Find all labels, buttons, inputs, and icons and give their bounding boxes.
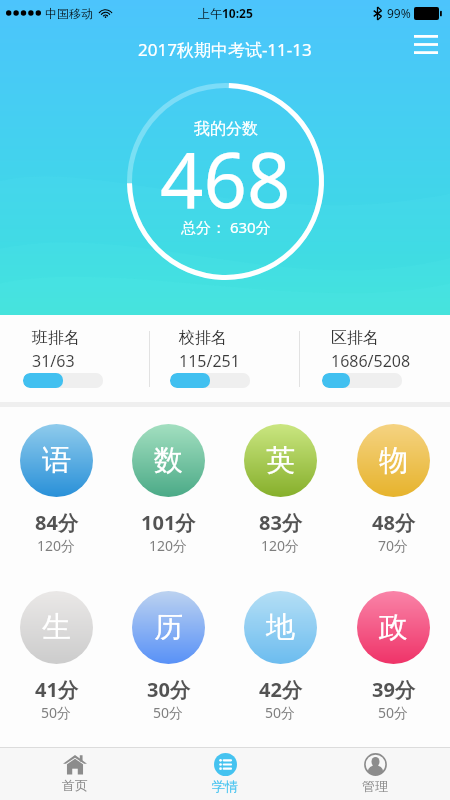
staticText: 84分 xyxy=(35,509,78,536)
staticText: 首页 xyxy=(62,777,88,793)
staticText: 83分 xyxy=(259,509,302,536)
button[interactable]: 班排名 xyxy=(0,315,150,402)
button[interactable]: 政 xyxy=(337,591,450,722)
staticText: 39分 xyxy=(372,676,415,703)
button[interactable]: 管理 xyxy=(300,747,450,800)
staticText: 班排名 xyxy=(32,328,80,348)
staticText: 10:25 xyxy=(222,5,253,21)
staticText: 物 xyxy=(379,442,408,479)
staticText: 1686/5208 xyxy=(331,350,411,372)
staticText: 99% xyxy=(387,5,411,21)
staticText: 管理 xyxy=(362,778,388,794)
staticText: 31/63 xyxy=(32,350,75,372)
button[interactable]: 区排名 xyxy=(300,315,450,402)
staticText: 中国移动 xyxy=(45,6,93,21)
button[interactable]: 英 xyxy=(224,424,337,555)
staticText: 30分 xyxy=(147,676,190,703)
button[interactable]: 地 xyxy=(224,591,337,722)
staticText: 50分 xyxy=(265,703,296,722)
button[interactable]: Menu xyxy=(407,25,445,63)
staticText: 语 xyxy=(42,442,71,479)
button[interactable]: 校排名 xyxy=(150,315,300,402)
button[interactable]: 生 xyxy=(0,591,112,722)
staticText: 地 xyxy=(266,609,295,646)
staticText: 115/251 xyxy=(179,350,240,372)
staticText: 区排名 xyxy=(331,328,379,348)
button[interactable]: 语 xyxy=(0,424,112,555)
staticText: 120分 xyxy=(261,536,300,555)
staticText: 上午 xyxy=(198,6,222,21)
staticText: 我的分数 xyxy=(194,119,258,139)
staticText: 41分 xyxy=(35,676,78,703)
staticText: 50分 xyxy=(378,703,409,722)
staticText: 50分 xyxy=(41,703,72,722)
staticText: 42分 xyxy=(259,676,302,703)
staticText: 政 xyxy=(379,609,408,646)
staticText: 学情 xyxy=(212,778,238,794)
staticText: 101分 xyxy=(141,509,196,536)
staticText: 2017秋期中考试-11-13 xyxy=(138,38,312,61)
button[interactable]: 物 xyxy=(337,424,450,555)
staticText: 历 xyxy=(154,609,183,646)
staticText: 英 xyxy=(266,442,295,479)
staticText: 总分： 630分 xyxy=(181,217,271,237)
staticText: 70分 xyxy=(378,536,409,555)
staticText: 120分 xyxy=(37,536,76,555)
button[interactable]: 数 xyxy=(112,424,224,555)
staticText: 生 xyxy=(42,609,71,646)
staticText: 468 xyxy=(160,127,291,231)
staticText: 50分 xyxy=(153,703,184,722)
staticText: 校排名 xyxy=(179,328,227,348)
staticText: 48分 xyxy=(372,509,415,536)
button[interactable]: 历 xyxy=(112,591,224,722)
button[interactable]: 首页 xyxy=(0,747,150,800)
staticText: 数 xyxy=(154,442,183,479)
button[interactable]: 学情 xyxy=(150,747,300,800)
staticText: 120分 xyxy=(149,536,188,555)
